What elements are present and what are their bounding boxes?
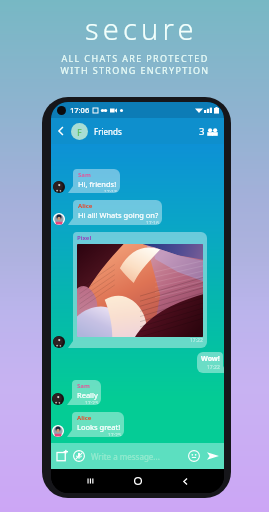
staticText: Pixel xyxy=(77,234,92,242)
staticText: ALL CHATS ARE PROTECTED xyxy=(61,52,209,64)
staticText: 17:25 xyxy=(108,432,121,436)
button[interactable]: Sam xyxy=(72,380,101,405)
button[interactable]: Members xyxy=(199,125,218,138)
staticText: Sam xyxy=(77,382,90,390)
button[interactable]: Sam xyxy=(73,169,120,193)
staticText: F xyxy=(77,126,82,138)
button[interactable]: Back xyxy=(176,472,194,490)
staticText: 3 xyxy=(199,125,205,138)
staticText: 17:06 xyxy=(70,105,90,115)
staticText: Sam xyxy=(78,171,91,179)
staticText: Hi all! Whats going on? xyxy=(78,210,159,220)
staticText: 17:23 xyxy=(85,400,98,404)
button[interactable]: Alice xyxy=(72,412,124,437)
button[interactable]: Home xyxy=(129,472,147,490)
staticText: Looks great! xyxy=(77,422,121,432)
staticText: Really xyxy=(77,390,98,400)
button[interactable]: Wow! xyxy=(197,352,223,373)
staticText: Hi, friends! xyxy=(78,179,117,189)
staticText: 17:16 xyxy=(146,220,159,224)
staticText: Alice xyxy=(78,202,93,210)
staticText: secure xyxy=(85,9,198,48)
staticText: 17:13 xyxy=(104,189,117,192)
button[interactable]: Emoji xyxy=(186,448,202,464)
staticText: Wow! xyxy=(201,354,220,364)
button[interactable]: Attach image xyxy=(54,448,70,464)
button[interactable]: Voice message xyxy=(71,448,87,464)
staticText: 17:22 xyxy=(190,337,203,344)
button[interactable]: Pixel xyxy=(73,232,207,348)
staticText: Alice xyxy=(77,414,92,422)
staticText: Write a message... xyxy=(91,451,160,462)
button[interactable]: Alice xyxy=(73,200,162,225)
button[interactable]: Recents xyxy=(81,472,99,490)
button[interactable]: Send xyxy=(205,448,221,464)
staticText: WITH STRONG ENCRYPTION xyxy=(60,64,210,76)
staticText: Friends xyxy=(94,126,122,137)
staticText: 17:22 xyxy=(207,364,220,371)
button[interactable]: Back xyxy=(53,123,69,139)
